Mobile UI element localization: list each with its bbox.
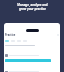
staticText: Practice xyxy=(5,33,16,37)
staticText: Manage, analyze and grow your practice xyxy=(17,3,48,11)
